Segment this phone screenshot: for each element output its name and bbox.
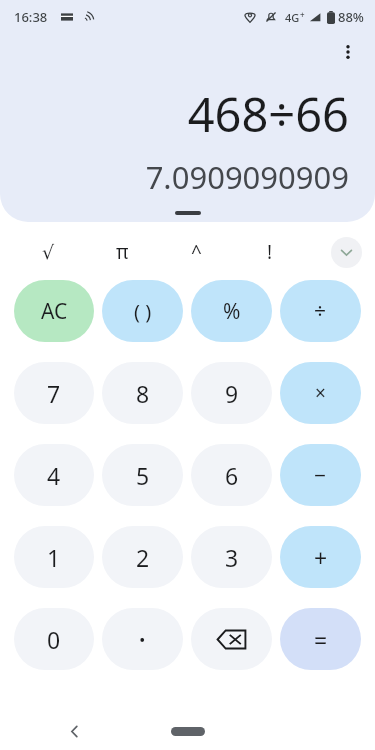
- staticText: ÷: [314, 297, 327, 326]
- staticText: 5: [136, 460, 150, 491]
- button[interactable]: !: [242, 232, 298, 272]
- button[interactable]: 9: [191, 362, 272, 424]
- staticText: +: [300, 9, 305, 20]
- staticText: 3: [225, 542, 239, 573]
- button[interactable]: 0: [14, 608, 94, 670]
- button[interactable]: ÷: [280, 280, 361, 342]
- staticText: AC: [41, 297, 68, 326]
- button[interactable]: −: [280, 444, 361, 506]
- button[interactable]: More options: [330, 34, 366, 70]
- staticText: √: [42, 241, 55, 263]
- button[interactable]: 6: [191, 444, 272, 506]
- button[interactable]: %: [191, 280, 272, 342]
- button[interactable]: =: [280, 608, 361, 670]
- staticText: 8: [136, 378, 150, 409]
- staticText: ×: [315, 380, 326, 406]
- button[interactable]: Backspace: [191, 608, 272, 670]
- button[interactable]: √: [20, 232, 76, 272]
- button[interactable]: •: [102, 608, 183, 670]
- button[interactable]: ^: [168, 232, 224, 272]
- button[interactable]: π: [94, 232, 150, 272]
- button[interactable]: 5: [102, 444, 183, 506]
- staticText: 6: [225, 460, 239, 491]
- staticText: %: [223, 297, 241, 326]
- staticText: =: [314, 624, 328, 655]
- button[interactable]: 4: [14, 444, 94, 506]
- staticText: 0: [47, 624, 61, 655]
- button[interactable]: 3: [191, 526, 272, 588]
- staticText: ^: [191, 239, 202, 265]
- staticText: ( ): [134, 298, 152, 325]
- staticText: 4G: [285, 10, 300, 25]
- button[interactable]: 7: [14, 362, 94, 424]
- staticText: 468÷66: [187, 82, 349, 146]
- button[interactable]: 8: [102, 362, 183, 424]
- staticText: 9: [225, 378, 239, 409]
- button[interactable]: ×: [280, 362, 361, 424]
- staticText: 88%: [338, 8, 364, 26]
- button[interactable]: 1: [14, 526, 94, 588]
- staticText: 16:38: [14, 8, 48, 26]
- staticText: −: [314, 461, 327, 490]
- button[interactable]: Expand keypad: [331, 237, 362, 268]
- staticText: 7.0909090909: [145, 156, 349, 198]
- staticText: 2: [136, 542, 150, 573]
- staticText: π: [116, 239, 129, 265]
- button[interactable]: 2: [102, 526, 183, 588]
- staticText: 4: [47, 460, 61, 491]
- button[interactable]: AC: [14, 280, 94, 342]
- staticText: 1: [47, 542, 61, 573]
- staticText: •: [139, 628, 146, 651]
- staticText: +: [314, 542, 328, 573]
- staticText: !: [267, 239, 273, 265]
- button[interactable]: Back: [58, 715, 90, 747]
- staticText: 7: [47, 378, 61, 409]
- button[interactable]: ( ): [102, 280, 183, 342]
- button[interactable]: +: [280, 526, 361, 588]
